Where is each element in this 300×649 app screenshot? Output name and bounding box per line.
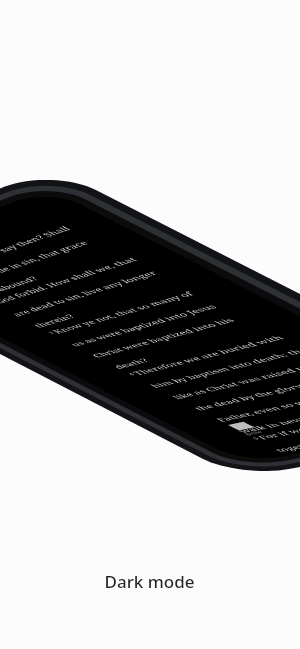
button[interactable] <box>0 0 300 649</box>
